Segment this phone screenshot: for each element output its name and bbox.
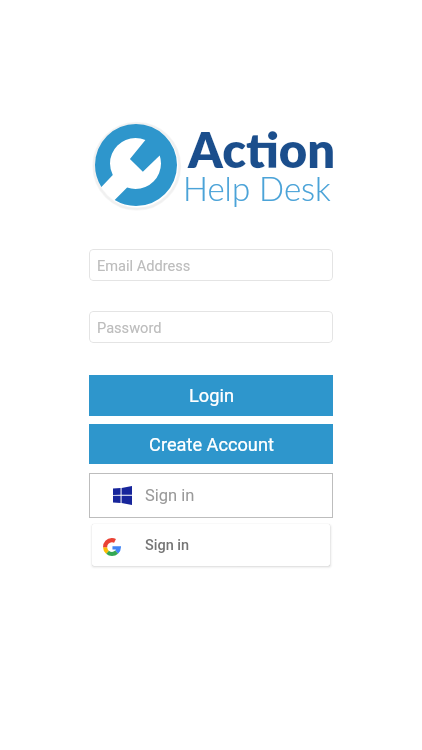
button[interactable]: Email Address <box>89 249 333 281</box>
staticText: Email Address <box>97 257 191 274</box>
button[interactable]: Create Account <box>89 424 333 464</box>
staticText: Sign in <box>145 486 195 505</box>
button[interactable]: Login <box>89 375 333 416</box>
button[interactable]: Password <box>89 311 333 343</box>
staticText: Create Account <box>149 434 274 455</box>
staticText: Login <box>189 385 234 406</box>
button[interactable]: Sign in <box>89 473 333 518</box>
staticText: Password <box>97 319 162 336</box>
staticText: Sign in <box>145 537 190 554</box>
staticText: Help Desk <box>183 168 331 208</box>
staticText: Action <box>188 120 336 179</box>
button[interactable]: Sign in <box>92 524 330 566</box>
